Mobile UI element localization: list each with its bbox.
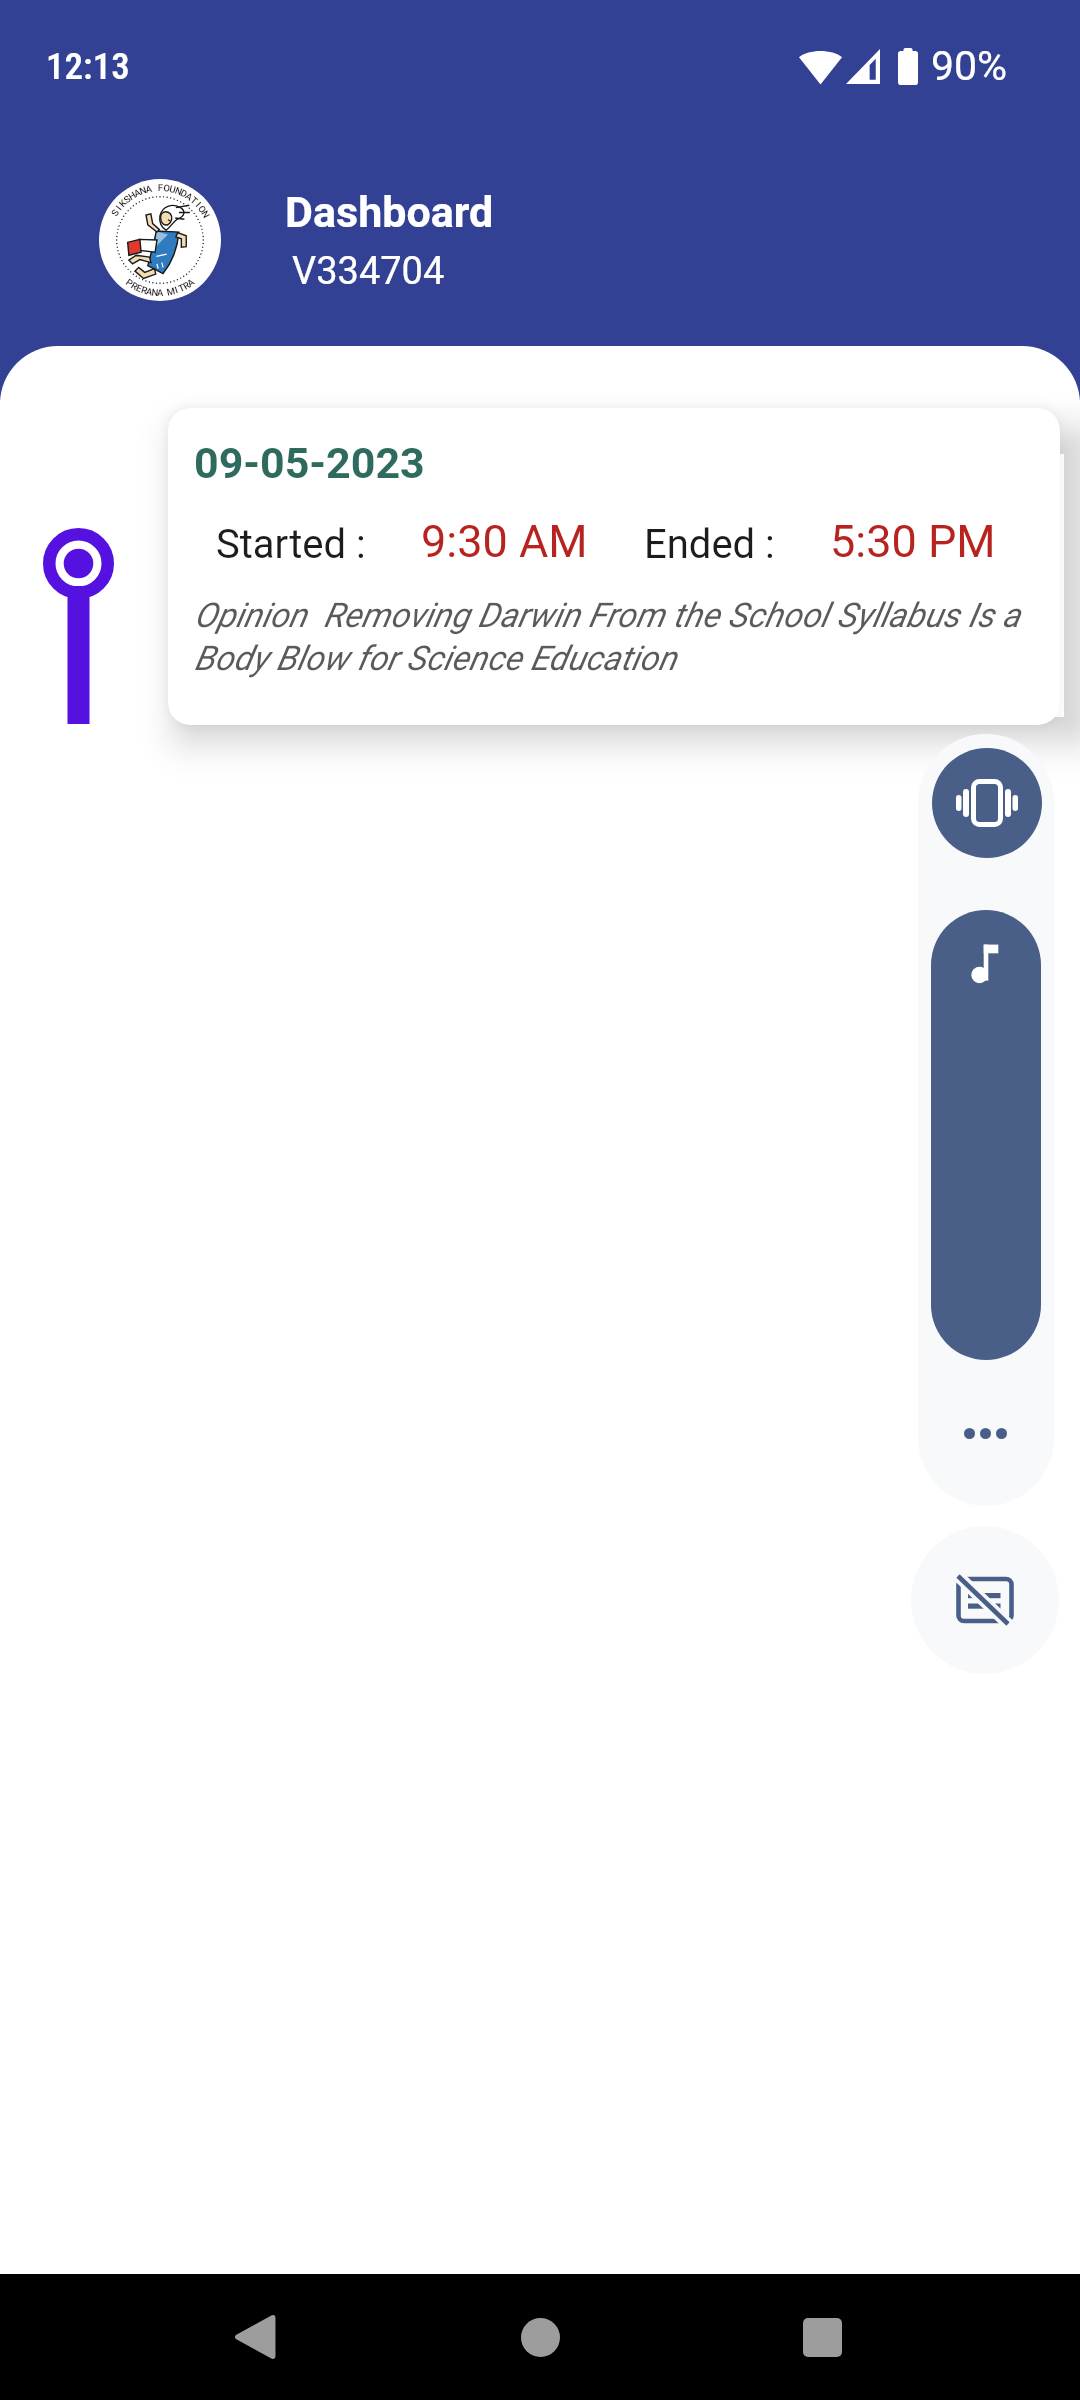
staticText: Started : [216, 521, 366, 568]
button[interactable]: Media volume [931, 910, 1041, 1360]
staticText: 90% [931, 42, 1008, 90]
button[interactable]: Captions off [911, 1526, 1059, 1674]
button[interactable]: Back [194, 2274, 314, 2400]
button[interactable]: Recents [762, 2274, 882, 2400]
staticText: 09-05-2023 [194, 438, 425, 488]
staticText: Ended : [644, 521, 775, 568]
staticText: V334704 [292, 249, 445, 294]
staticText: Opinion Removing Darwin From the School … [194, 595, 1046, 678]
staticText: 5:30 PM [830, 515, 996, 568]
staticText: 12:13 [46, 45, 130, 88]
staticText: 9:30 AM [421, 515, 588, 568]
button[interactable]: Home [480, 2274, 600, 2400]
staticText: Dashboard [285, 187, 494, 237]
button[interactable]: 09-05-2023 [168, 408, 1060, 725]
button[interactable]: More volume settings [949, 1412, 1022, 1455]
button[interactable]: Ringer mode vibrate [932, 748, 1042, 858]
